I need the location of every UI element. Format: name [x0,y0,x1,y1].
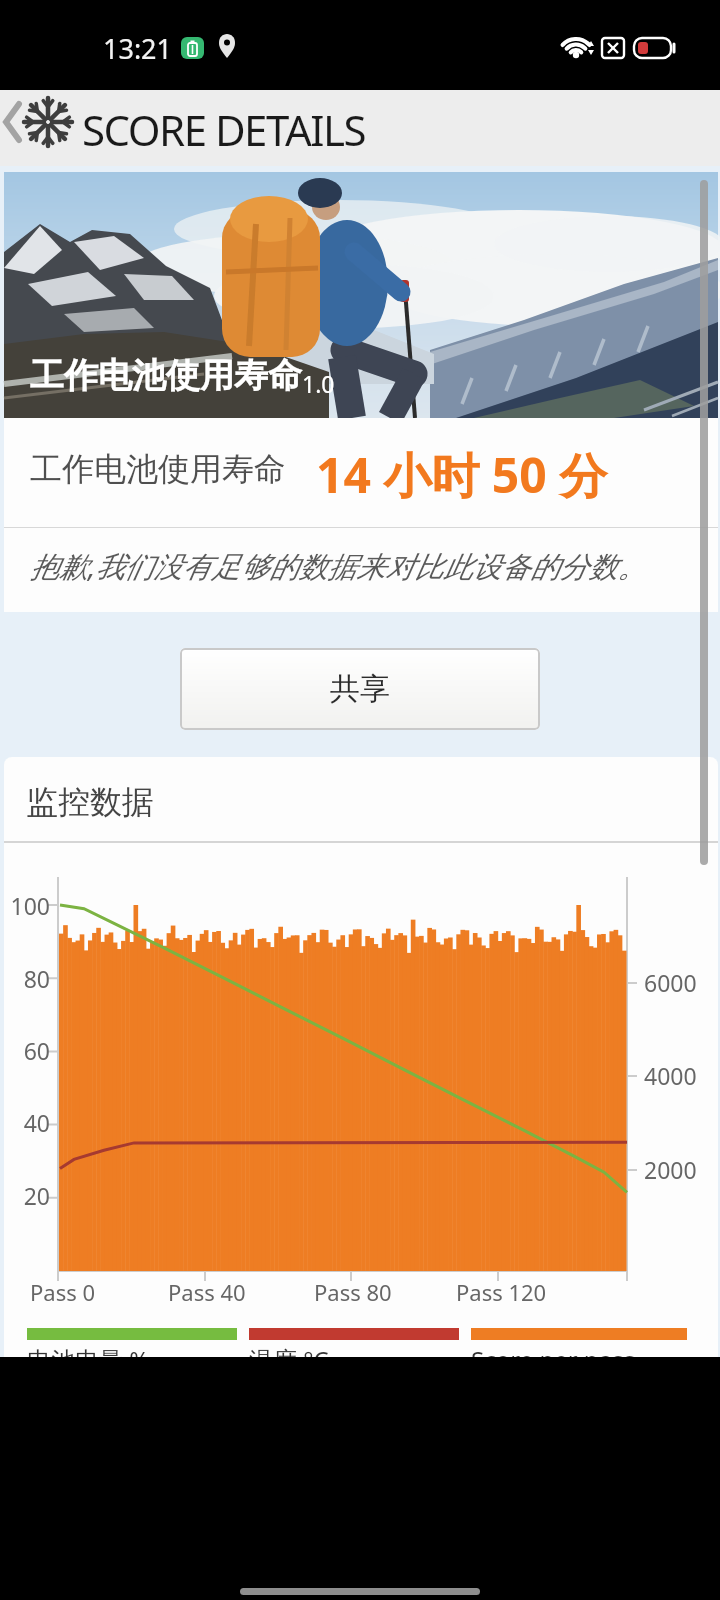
staticText: 1.0 [302,368,335,399]
staticText: 2000 [644,1154,697,1185]
staticText: 温度 °C [249,1343,329,1357]
staticText: SCORE DETAILS [82,101,366,158]
staticText: Pass 80 [314,1277,392,1307]
staticText: 14 小时 50 分 [316,442,608,508]
staticText: Score per pass [471,1343,636,1357]
staticText: 40 [4,1107,50,1138]
staticText: Pass 0 [30,1277,96,1307]
staticText: Pass 40 [168,1277,246,1307]
staticText: 工作电池使用寿命 [30,354,302,397]
staticText: 工作电池使用寿命 [30,449,286,489]
button[interactable]: 共享 [180,648,540,730]
staticText: 60 [4,1035,50,1066]
staticText: 100 [4,890,50,921]
staticText: 监控数据 [26,782,154,822]
button[interactable]: SCORE DETAILS [0,90,720,166]
staticText: 电池电量 % [27,1343,150,1357]
staticText: 6000 [644,967,697,998]
staticText: 80 [4,963,50,994]
staticText: 4000 [644,1060,697,1091]
staticText: 抱歉,我们没有足够的数据来对比此设备的分数。 [30,546,647,586]
staticText: 20 [4,1180,50,1211]
staticText: Pass 120 [456,1277,547,1307]
staticText: 13:21 [103,30,173,67]
staticText: 共享 [330,670,390,708]
